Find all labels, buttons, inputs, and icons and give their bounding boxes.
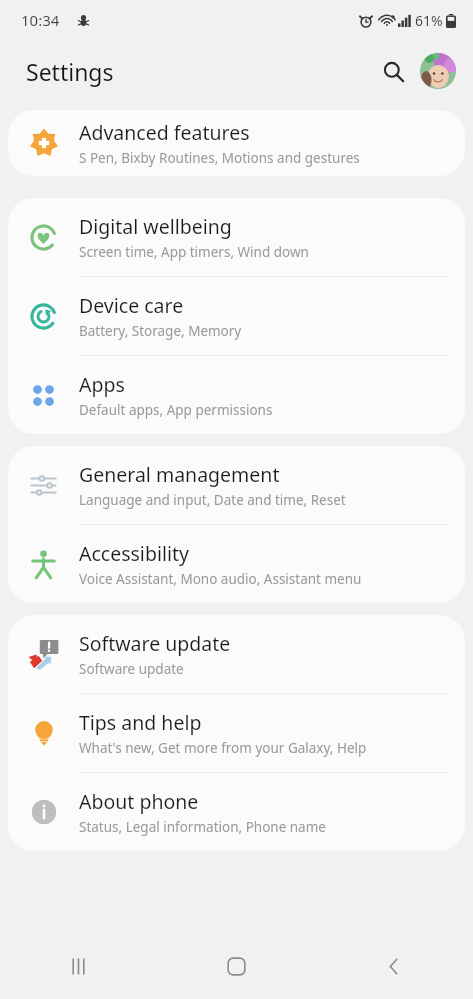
staticText: Tips and help (79, 709, 202, 736)
button[interactable]: Recent apps (0, 933, 157, 999)
staticText: Default apps, App permissions (79, 401, 273, 419)
staticText: 61% (415, 11, 443, 30)
button[interactable]: Apps (8, 356, 465, 434)
staticText: Status, Legal information, Phone name (79, 818, 326, 836)
staticText: Language and input, Date and time, Reset (79, 491, 346, 509)
button[interactable]: Digital wellbeing (8, 198, 465, 276)
staticText: Apps (79, 371, 125, 398)
staticText: Voice Assistant, Mono audio, Assistant m… (79, 570, 362, 588)
button[interactable]: Software update (8, 615, 465, 693)
staticText: S Pen, Bixby Routines, Motions and gestu… (79, 149, 360, 167)
button[interactable]: Search (371, 49, 415, 93)
staticText: Accessibility (79, 540, 189, 567)
button[interactable]: Device care (8, 277, 465, 355)
button[interactable]: General management (8, 446, 465, 524)
staticText: Settings (26, 56, 114, 87)
staticText: General management (79, 461, 280, 488)
button[interactable]: Profile (417, 50, 459, 92)
staticText: Software update (79, 660, 184, 678)
button[interactable]: Advanced features (8, 110, 465, 176)
staticText: Battery, Storage, Memory (79, 322, 242, 340)
button[interactable]: Tips and help (8, 694, 465, 772)
staticText: Device care (79, 292, 184, 319)
button[interactable]: About phone (8, 773, 465, 851)
staticText: Digital wellbeing (79, 213, 232, 240)
staticText: Software update (79, 630, 231, 657)
staticText: Advanced features (79, 119, 250, 146)
staticText: What's new, Get more from your Galaxy, H… (79, 739, 367, 757)
staticText: Screen time, App timers, Wind down (79, 243, 309, 261)
staticText: 10:34 (21, 10, 60, 30)
button[interactable]: Accessibility (8, 525, 465, 603)
button[interactable]: Back (315, 933, 473, 999)
button[interactable]: Home (157, 933, 315, 999)
staticText: About phone (79, 788, 199, 815)
